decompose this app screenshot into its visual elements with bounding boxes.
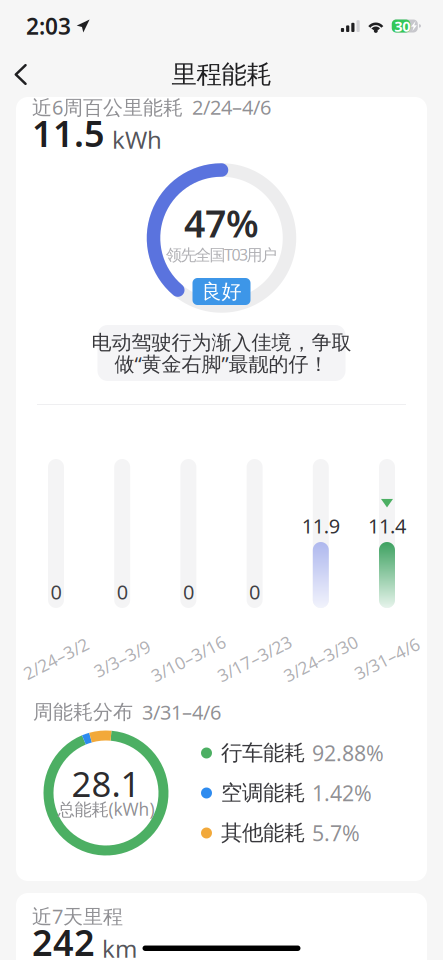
staticText: 2/24–4/6 bbox=[192, 94, 271, 120]
staticText: 0 bbox=[117, 578, 128, 605]
staticText: 47% bbox=[184, 198, 259, 248]
staticText: 近7天里程 bbox=[32, 903, 123, 929]
staticText: 0 bbox=[183, 578, 194, 605]
staticText: 良好 bbox=[201, 279, 241, 304]
staticText: kWh bbox=[112, 123, 162, 155]
staticText: 3/3–3/9 bbox=[92, 647, 153, 670]
staticText: 0 bbox=[50, 578, 61, 605]
staticText: 3/10–3/16 bbox=[148, 647, 229, 670]
staticText: 里程能耗 bbox=[171, 59, 271, 90]
staticText: 0 bbox=[249, 578, 260, 605]
button[interactable]: Back bbox=[0, 53, 43, 96]
staticText: 242 bbox=[32, 918, 95, 960]
staticText: 近6周百公里能耗 bbox=[32, 94, 183, 120]
staticText: 领先全国T03用户 bbox=[166, 244, 277, 265]
staticText: 5.7% bbox=[312, 819, 360, 847]
button[interactable]: 良好 bbox=[192, 278, 250, 305]
staticText: 总能耗(kWh) bbox=[57, 797, 154, 820]
staticText: km bbox=[102, 932, 137, 960]
staticText: 28.1 bbox=[71, 760, 140, 806]
staticText: 3/31–4/6 bbox=[351, 647, 422, 670]
staticText: 11.4 bbox=[368, 512, 406, 539]
staticText: 空调能耗 bbox=[221, 780, 305, 806]
staticText: 1.42% bbox=[312, 779, 372, 807]
staticText: 11.5 bbox=[32, 109, 105, 157]
staticText: 30 bbox=[394, 16, 410, 36]
staticText: 3/31–4/6 bbox=[142, 699, 221, 725]
staticText: 3/24–3/30 bbox=[280, 647, 361, 670]
staticText: 2:03 bbox=[26, 11, 71, 41]
staticText: 其他能耗 bbox=[221, 820, 305, 846]
staticText: 周能耗分布 bbox=[33, 700, 133, 724]
staticText: 做“黄金右脚”最靓的仔！ bbox=[114, 350, 328, 377]
staticText: 92.88% bbox=[312, 739, 384, 767]
staticText: 3/17–3/23 bbox=[214, 647, 295, 670]
staticText: 行车能耗 bbox=[221, 740, 305, 766]
staticText: 11.9 bbox=[302, 512, 340, 539]
staticText: 2/24–3/2 bbox=[20, 647, 91, 670]
staticText: 电动驾驶行为渐入佳境，争取 bbox=[91, 330, 351, 355]
